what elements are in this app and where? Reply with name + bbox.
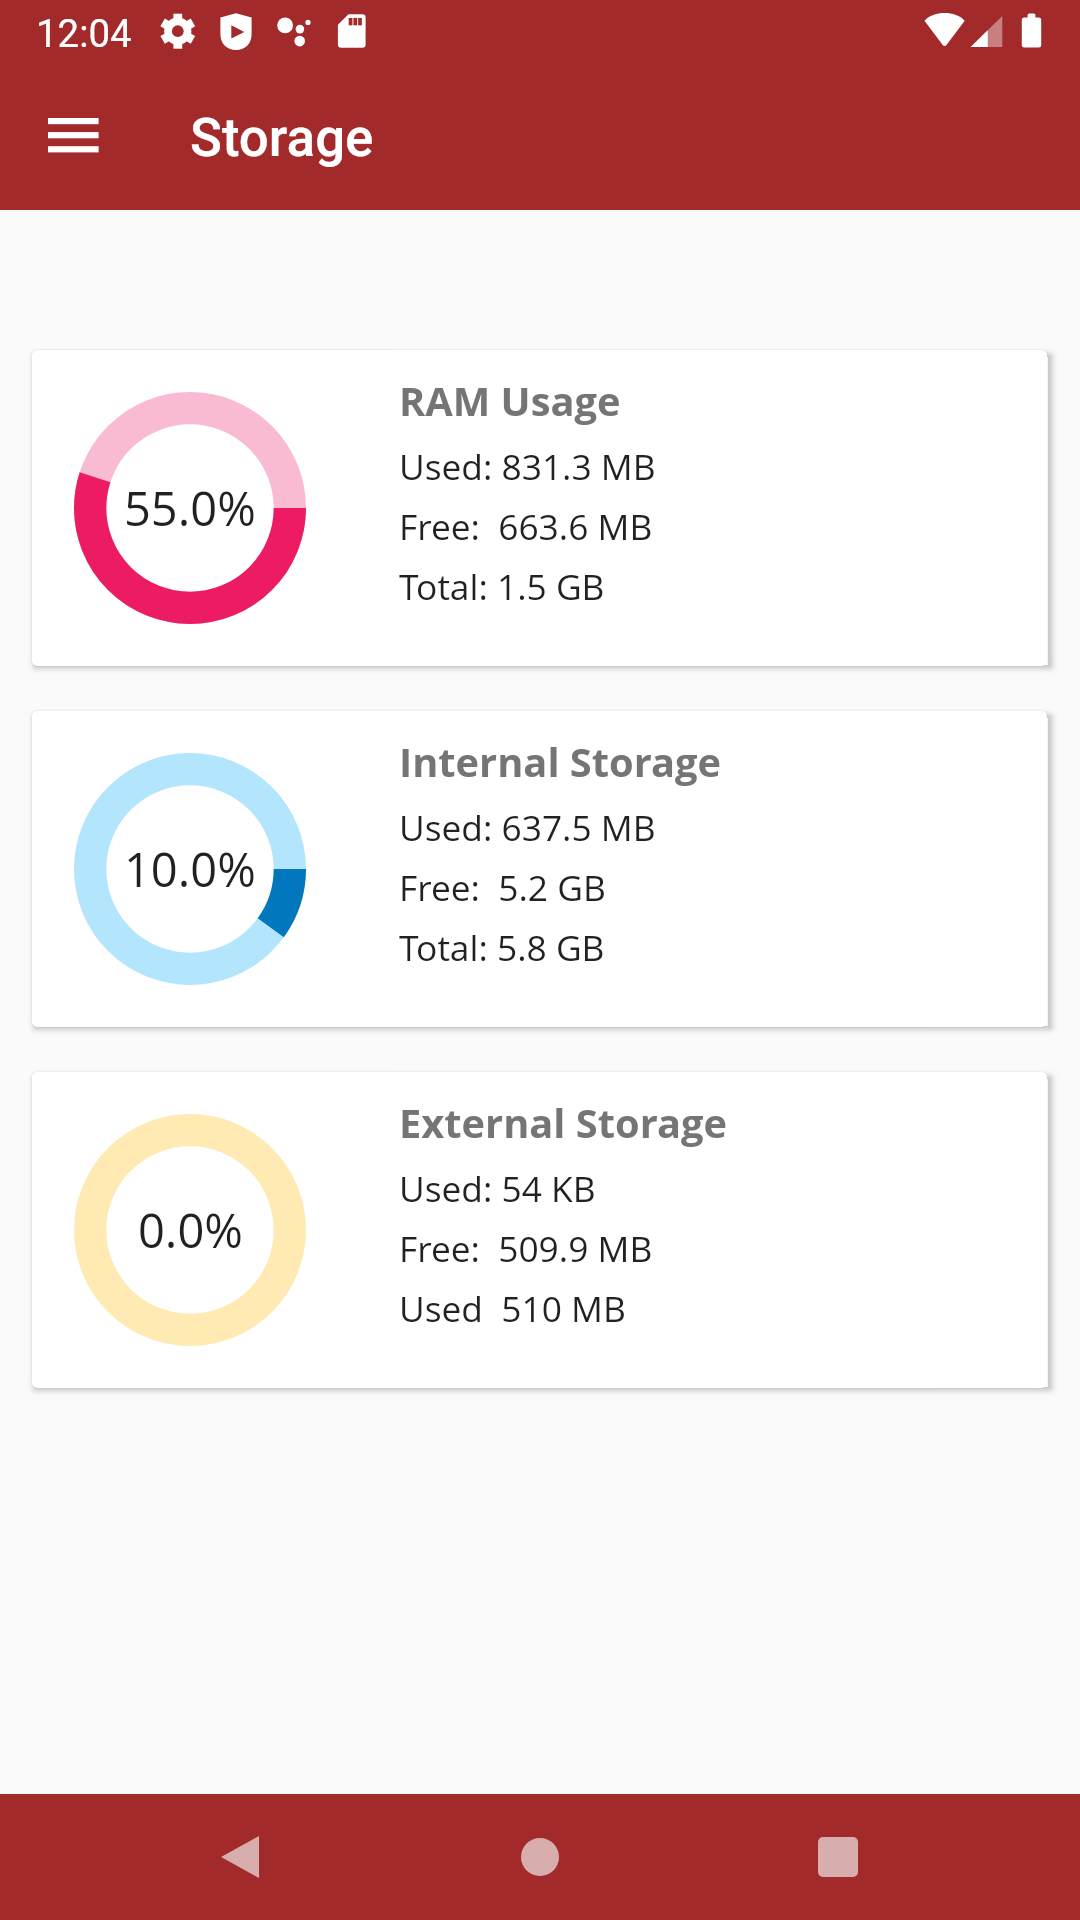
staticText: Used: 831.3 MB <box>399 442 656 490</box>
staticText: 0.0% <box>138 1198 243 1262</box>
staticText: Free: 663.6 MB <box>399 502 653 550</box>
staticText: Storage <box>190 107 374 169</box>
staticText: Total: 5.8 GB <box>399 923 605 971</box>
staticText: External Storage <box>399 1095 727 1149</box>
staticText: Total: 1.5 GB <box>399 562 605 610</box>
button[interactable]: 10.0% <box>32 711 1047 1027</box>
staticText: 10.0% <box>124 837 256 901</box>
button[interactable]: Back <box>180 1797 300 1917</box>
staticText: Used: 54 KB <box>399 1164 596 1212</box>
button[interactable]: Recent apps <box>778 1797 898 1917</box>
staticText: Free: 509.9 MB <box>399 1224 653 1272</box>
staticText: Internal Storage <box>399 734 722 788</box>
button[interactable]: 55.0% <box>32 350 1047 666</box>
button[interactable]: Home <box>480 1797 600 1917</box>
button[interactable]: 0.0% <box>32 1072 1047 1388</box>
staticText: Used: 637.5 MB <box>399 803 656 851</box>
staticText: RAM Usage <box>399 373 621 427</box>
button[interactable]: Open navigation drawer <box>23 87 123 187</box>
staticText: Free: 5.2 GB <box>399 863 606 911</box>
staticText: 12:04 <box>36 11 132 56</box>
staticText: 55.0% <box>124 476 256 540</box>
staticText: Used 510 MB <box>399 1284 626 1332</box>
